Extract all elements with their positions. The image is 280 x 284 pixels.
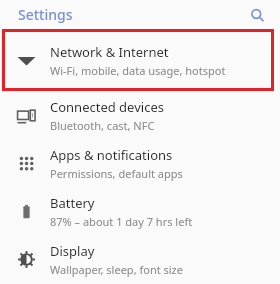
staticText: Battery: [50, 194, 95, 212]
button[interactable]: Battery: [0, 187, 280, 235]
button[interactable]: Apps & notifications: [0, 139, 280, 187]
staticText: Permissions, default apps: [50, 166, 183, 181]
staticText: Network & Internet: [50, 43, 169, 61]
staticText: Wallpaper, sleep, font size: [50, 262, 183, 277]
staticText: Apps & notifications: [50, 146, 173, 164]
staticText: Display: [50, 242, 95, 260]
staticText: 87% – about 1 day 7 hrs left: [50, 214, 193, 229]
staticText: Connected devices: [50, 98, 164, 116]
button[interactable]: Connected devices: [0, 91, 280, 139]
button[interactable]: Network & Internet: [2, 29, 274, 91]
button[interactable]: Display: [0, 235, 280, 283]
staticText: Settings: [18, 5, 73, 24]
staticText: Bluetooth, cast, NFC: [50, 118, 155, 133]
button[interactable]: Search settings: [243, 1, 271, 29]
staticText: Wi-Fi, mobile, data usage, hotspot: [50, 63, 226, 78]
